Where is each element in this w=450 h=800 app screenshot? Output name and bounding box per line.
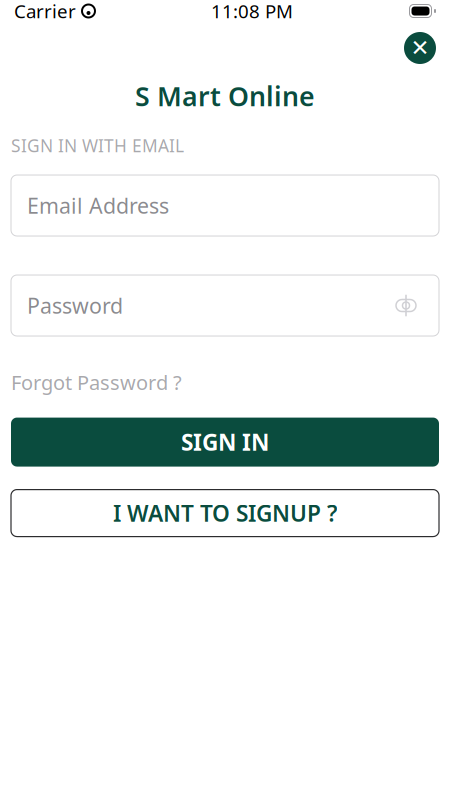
staticText: I WANT TO SIGNUP ?: [113, 498, 337, 528]
staticText: Email Address: [27, 191, 169, 220]
staticText: S Mart Online: [135, 78, 315, 114]
staticText: SIGN IN WITH EMAIL: [11, 134, 184, 157]
staticText: ✕: [410, 35, 429, 61]
staticText: SIGN IN: [181, 427, 269, 457]
button[interactable]: SIGN IN: [11, 418, 439, 467]
button[interactable]: Close: [400, 28, 440, 68]
staticText: Forgot Password ?: [11, 369, 182, 396]
button[interactable]: Forgot Password ?: [11, 369, 182, 396]
button[interactable]: I WANT TO SIGNUP ?: [11, 490, 439, 537]
button[interactable]: Show password: [389, 288, 423, 322]
staticText: Carrier: [14, 0, 76, 23]
staticText: Password: [27, 291, 123, 320]
staticText: 11:08 PM: [211, 0, 293, 23]
